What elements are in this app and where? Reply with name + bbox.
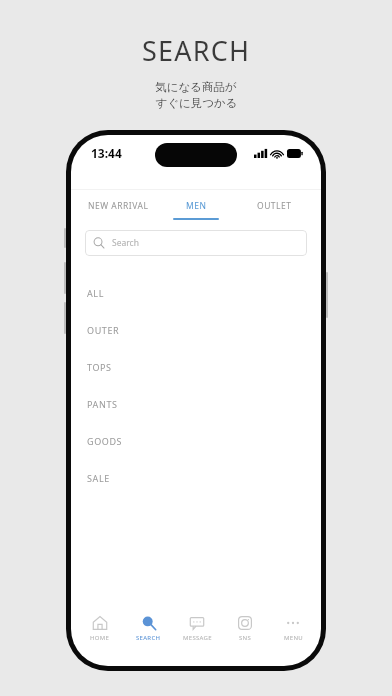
- staticText: SEARCH: [136, 634, 161, 642]
- staticText: 13:44: [91, 145, 122, 161]
- staticText: TOPS: [87, 361, 112, 373]
- staticText: すぐに見つかる: [155, 96, 238, 110]
- staticText: Search: [112, 237, 139, 249]
- button[interactable]: MENU: [269, 608, 317, 648]
- button[interactable]: SALE: [71, 459, 321, 496]
- button[interactable]: PANTS: [71, 385, 321, 422]
- button[interactable]: GOODS: [71, 422, 321, 459]
- button[interactable]: MEN: [157, 190, 235, 220]
- staticText: MEN: [186, 200, 207, 212]
- staticText: OUTLET: [257, 200, 292, 212]
- button[interactable]: MESSAGE: [173, 608, 221, 648]
- staticText: HOME: [90, 634, 110, 642]
- button[interactable]: OUTER: [71, 311, 321, 348]
- staticText: MESSAGE: [183, 634, 212, 642]
- button[interactable]: HOME: [75, 608, 124, 648]
- button[interactable]: ALL: [71, 274, 321, 311]
- staticText: NEW ARRIVAL: [88, 200, 149, 212]
- staticText: MENU: [284, 634, 303, 642]
- button[interactable]: OUTLET: [235, 190, 313, 218]
- button[interactable]: NEW ARRIVAL: [79, 190, 157, 218]
- button[interactable]: SNS: [221, 608, 269, 648]
- staticText: SALE: [87, 472, 110, 484]
- staticText: GOODS: [87, 435, 123, 447]
- staticText: SNS: [239, 634, 252, 642]
- staticText: SEARCH: [142, 32, 251, 69]
- button[interactable]: Search: [85, 230, 307, 256]
- staticText: 気になる商品が: [155, 80, 237, 94]
- staticText: OUTER: [87, 324, 120, 336]
- staticText: ALL: [87, 287, 104, 299]
- button[interactable]: TOPS: [71, 348, 321, 385]
- staticText: PANTS: [87, 398, 118, 410]
- button[interactable]: SEARCH: [124, 608, 173, 648]
